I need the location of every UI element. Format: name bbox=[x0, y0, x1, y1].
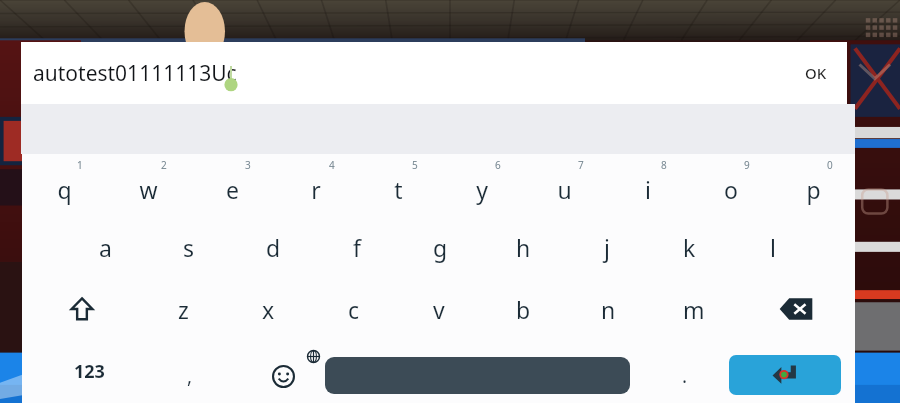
staticText: autotest01111113Uc bbox=[33, 59, 237, 88]
staticText: d bbox=[266, 232, 281, 263]
staticText: v bbox=[433, 294, 445, 325]
staticText: c bbox=[348, 294, 360, 325]
button[interactable]: . bbox=[672, 353, 698, 399]
staticText: t bbox=[394, 174, 403, 205]
staticText: 1 bbox=[77, 158, 83, 172]
staticText: n bbox=[601, 294, 616, 325]
button[interactable]: 3 bbox=[190, 154, 274, 216]
staticText: b bbox=[516, 294, 531, 325]
staticText: x bbox=[262, 294, 275, 325]
button[interactable]: Emoji bbox=[258, 347, 308, 397]
button[interactable]: m bbox=[651, 278, 736, 340]
button[interactable]: g bbox=[399, 216, 482, 278]
staticText: , bbox=[187, 363, 193, 389]
staticText: . bbox=[682, 363, 688, 389]
button[interactable]: autotest01111113Uc bbox=[21, 42, 847, 104]
button[interactable]: OK bbox=[799, 57, 833, 89]
staticText: o bbox=[724, 174, 738, 205]
button[interactable]: 123 bbox=[66, 351, 113, 392]
button[interactable]: 1 bbox=[22, 154, 106, 216]
button[interactable]: b bbox=[481, 278, 566, 340]
button[interactable]: n bbox=[566, 278, 651, 340]
button[interactable]: Backspace bbox=[736, 278, 855, 340]
button[interactable]: v bbox=[396, 278, 481, 340]
button[interactable]: d bbox=[231, 216, 315, 278]
staticText: 3 bbox=[245, 158, 251, 172]
staticText: k bbox=[683, 232, 696, 263]
staticText: w bbox=[139, 174, 158, 205]
button[interactable]: f bbox=[315, 216, 399, 278]
staticText: l bbox=[770, 232, 776, 263]
button[interactable]: , bbox=[177, 353, 203, 399]
staticText: 6 bbox=[495, 158, 501, 172]
staticText: f bbox=[353, 232, 361, 263]
staticText: j bbox=[604, 232, 610, 263]
staticText: p bbox=[806, 174, 821, 205]
button[interactable]: 5 bbox=[357, 154, 440, 216]
staticText: z bbox=[178, 294, 189, 325]
staticText: 9 bbox=[744, 158, 750, 172]
staticText: a bbox=[99, 232, 112, 263]
button[interactable]: Space bbox=[325, 357, 630, 394]
button[interactable]: x bbox=[226, 278, 311, 340]
button[interactable]: j bbox=[565, 216, 648, 278]
button[interactable]: s bbox=[147, 216, 231, 278]
staticText: m bbox=[683, 294, 705, 325]
staticText: h bbox=[516, 232, 531, 263]
staticText: 8 bbox=[661, 158, 667, 172]
button[interactable]: l bbox=[731, 216, 814, 278]
button[interactable]: 6 bbox=[440, 154, 523, 216]
staticText: g bbox=[433, 232, 448, 263]
staticText: 123 bbox=[74, 359, 105, 384]
button[interactable]: c bbox=[311, 278, 396, 340]
staticText: q bbox=[57, 174, 72, 205]
button[interactable]: 0 bbox=[772, 154, 855, 216]
staticText: OK bbox=[805, 63, 827, 83]
button[interactable]: 8 bbox=[606, 154, 689, 216]
staticText: 7 bbox=[578, 158, 584, 172]
staticText: 0 bbox=[827, 158, 833, 172]
staticText: u bbox=[557, 174, 572, 205]
staticText: s bbox=[183, 232, 195, 263]
button[interactable]: 9 bbox=[689, 154, 772, 216]
staticText: 2 bbox=[161, 158, 167, 172]
button[interactable]: 2 bbox=[106, 154, 190, 216]
button[interactable]: 7 bbox=[523, 154, 606, 216]
button[interactable]: k bbox=[648, 216, 731, 278]
button[interactable]: a bbox=[63, 216, 147, 278]
button[interactable]: Enter bbox=[729, 355, 841, 395]
staticText: e bbox=[226, 174, 239, 205]
button[interactable]: 4 bbox=[274, 154, 357, 216]
button[interactable]: Shift bbox=[22, 278, 141, 340]
staticText: r bbox=[311, 174, 321, 205]
staticText: y bbox=[476, 174, 488, 205]
staticText: i bbox=[645, 174, 651, 205]
staticText: 5 bbox=[412, 158, 418, 172]
button[interactable]: h bbox=[482, 216, 565, 278]
staticText: 4 bbox=[329, 158, 335, 172]
button[interactable]: z bbox=[141, 278, 226, 340]
